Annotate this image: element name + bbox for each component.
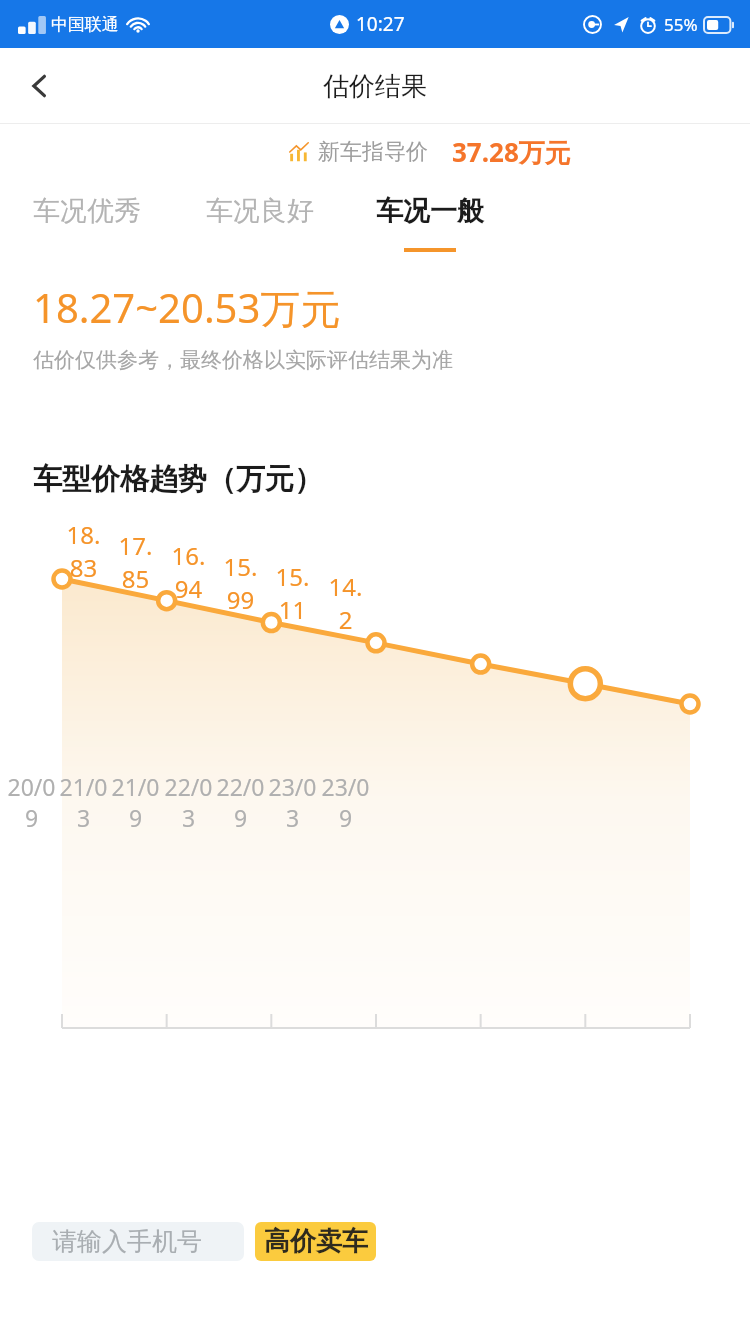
button[interactable]: 车况一般 — [376, 194, 484, 252]
staticText: 14.2 — [324, 570, 367, 636]
staticText: 21/09 — [108, 771, 163, 833]
staticText: 16.94 — [167, 539, 210, 605]
staticText: 10:27 — [356, 11, 405, 37]
staticText: 中国联通 — [51, 14, 119, 35]
button[interactable]: 高价卖车 — [255, 1222, 376, 1261]
staticText: 23/09 — [318, 771, 373, 833]
staticText: 22/03 — [161, 771, 216, 833]
staticText: 15.99 — [219, 550, 262, 616]
staticText: 18.83 — [62, 518, 105, 584]
staticText: 高价卖车 — [264, 1225, 368, 1258]
staticText: 15.11 — [271, 560, 314, 626]
staticText: 21/03 — [56, 771, 111, 833]
staticText: 37.28万元 — [452, 134, 571, 170]
staticText: 车况一般 — [376, 194, 484, 228]
staticText: 估价结果 — [323, 70, 427, 103]
button[interactable]: 请输入手机号 — [32, 1222, 244, 1261]
button[interactable]: Back — [12, 58, 68, 114]
staticText: 18.27~20.53万元 — [33, 280, 341, 335]
staticText: 20/09 — [4, 771, 59, 833]
button[interactable]: 车况优秀 — [33, 194, 141, 228]
staticText: 请输入手机号 — [52, 1226, 202, 1257]
staticText: 新车指导价 — [318, 138, 428, 166]
staticText: 估价仅供参考，最终价格以实际评估结果为准 — [33, 347, 453, 373]
button[interactable]: 车况良好 — [206, 194, 314, 228]
staticText: 55% — [664, 13, 698, 36]
staticText: 22/09 — [213, 771, 268, 833]
staticText: 车型价格趋势（万元） — [33, 461, 323, 498]
staticText: 17.85 — [114, 529, 157, 595]
staticText: 23/03 — [265, 771, 320, 833]
